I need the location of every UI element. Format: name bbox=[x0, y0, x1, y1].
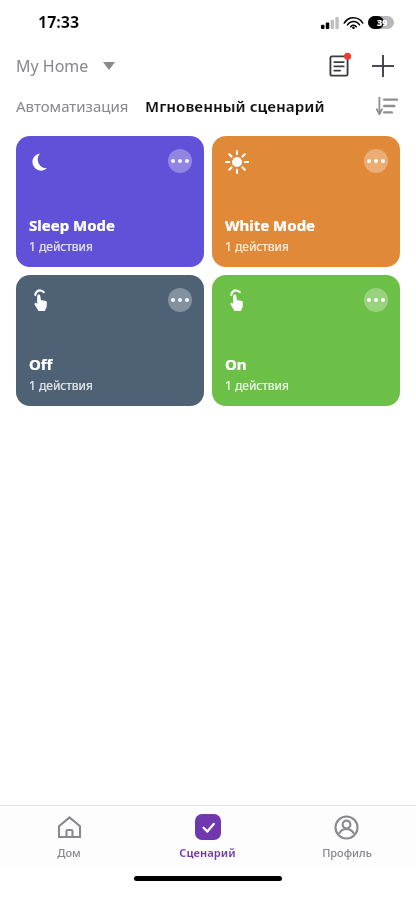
button[interactable]: More options bbox=[364, 288, 388, 312]
staticText: My Home bbox=[16, 55, 89, 77]
button[interactable]: Дом bbox=[0, 815, 138, 860]
button[interactable]: More options bbox=[364, 149, 388, 173]
staticText: Дом bbox=[57, 845, 81, 860]
staticText: 1 действия bbox=[29, 238, 93, 254]
button[interactable]: More options bbox=[212, 136, 400, 267]
button[interactable]: Профиль bbox=[277, 815, 416, 860]
staticText: On bbox=[225, 354, 247, 374]
staticText: 17:33 bbox=[38, 11, 80, 33]
button[interactable]: More options bbox=[212, 275, 400, 406]
staticText: Sleep Mode bbox=[29, 215, 115, 235]
staticText: 39 bbox=[377, 16, 388, 28]
button[interactable]: Sort bbox=[372, 91, 402, 121]
staticText: 1 действия bbox=[225, 377, 289, 393]
button[interactable]: More options bbox=[168, 149, 192, 173]
staticText: Off bbox=[29, 354, 53, 374]
staticText: Автоматизация bbox=[16, 96, 129, 116]
staticText: Мгновенный сценарий bbox=[145, 96, 325, 116]
staticText: White Mode bbox=[225, 215, 316, 235]
button[interactable]: More options bbox=[168, 288, 192, 312]
staticText: 1 действия bbox=[29, 377, 93, 393]
staticText: 1 действия bbox=[225, 238, 289, 254]
button[interactable]: More options bbox=[16, 136, 204, 267]
staticText: Профиль bbox=[322, 845, 372, 860]
button[interactable]: Add bbox=[366, 49, 400, 83]
button[interactable]: More options bbox=[16, 275, 204, 406]
button[interactable]: My Home bbox=[16, 55, 115, 77]
button[interactable]: Автоматизация bbox=[16, 96, 129, 116]
staticText: Сценарий bbox=[179, 845, 236, 860]
button[interactable]: Сценарий bbox=[138, 814, 277, 860]
button[interactable]: Мгновенный сценарий bbox=[145, 96, 325, 116]
button[interactable]: Notes bbox=[322, 49, 356, 83]
